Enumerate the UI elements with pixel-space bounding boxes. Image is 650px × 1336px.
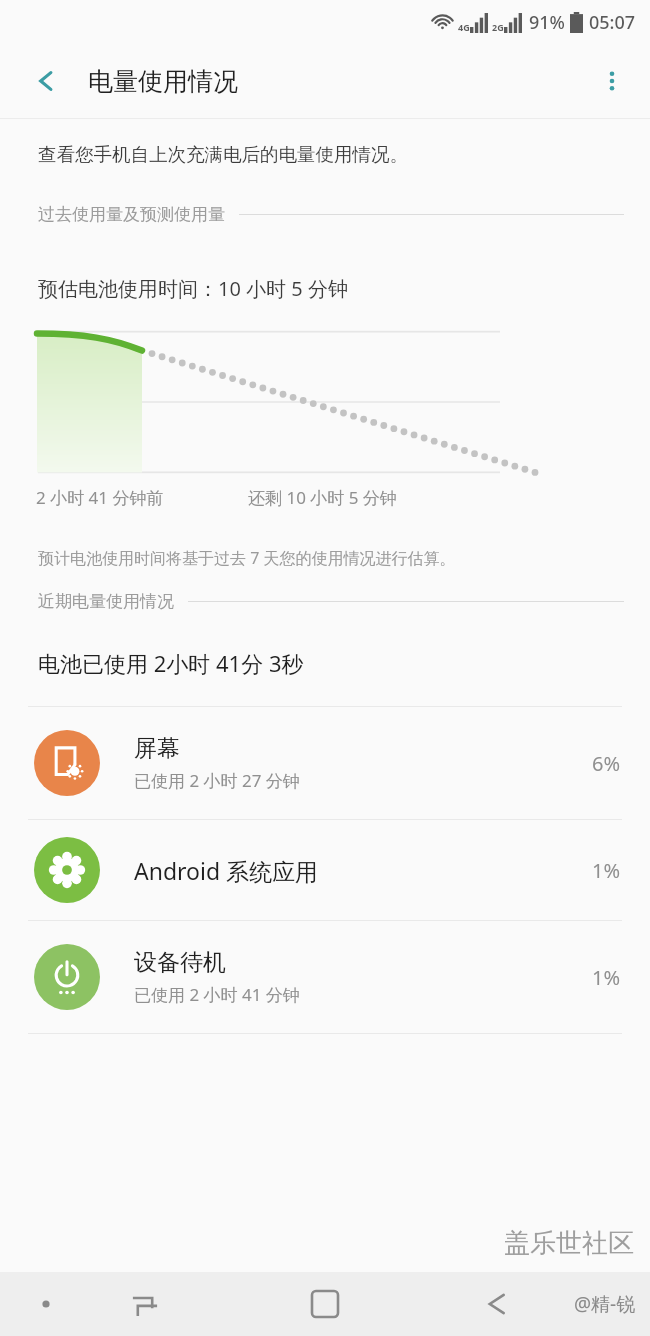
staticText: 过去使用量及预测使用量: [38, 204, 225, 225]
staticText: Android 系统应用: [134, 855, 319, 886]
staticText: 设备待机: [134, 948, 226, 977]
staticText: 6%: [591, 750, 620, 777]
staticText: 近期电量使用情况: [38, 591, 174, 612]
button[interactable]: Home: [296, 1275, 354, 1333]
button[interactable]: 屏幕: [0, 707, 650, 819]
staticText: @精-锐: [574, 1291, 636, 1317]
staticText: 2G: [492, 21, 504, 33]
staticText: 4G: [458, 21, 470, 33]
staticText: 还剩 10 小时 5 分钟: [248, 486, 397, 509]
button[interactable]: More options: [588, 57, 636, 105]
button[interactable]: Android 系统应用: [0, 820, 650, 920]
staticText: 盖乐世社区: [504, 1227, 634, 1260]
button[interactable]: Back: [470, 1277, 524, 1331]
staticText: 05:07: [589, 10, 636, 35]
button[interactable]: Back: [22, 57, 70, 105]
staticText: 屏幕: [134, 734, 180, 763]
button[interactable]: Menu dot: [22, 1280, 70, 1328]
staticText: 预计电池使用时间将基于过去 7 天您的使用情况进行估算。: [38, 547, 456, 569]
staticText: 2 小时 41 分钟前: [36, 486, 164, 509]
button[interactable]: 设备待机: [0, 921, 650, 1033]
staticText: 91%: [529, 10, 565, 35]
staticText: 已使用 2 小时 27 分钟: [134, 769, 300, 792]
staticText: 查看您手机自上次充满电后的电量使用情况。: [38, 143, 408, 166]
staticText: 电量使用情况: [88, 66, 238, 97]
button[interactable]: Recents: [118, 1277, 172, 1331]
staticText: 1%: [591, 964, 620, 991]
staticText: 电池已使用 2小时 41分 3秒: [38, 648, 304, 678]
staticText: 预估电池使用时间：10 小时 5 分钟: [38, 275, 348, 302]
staticText: 已使用 2 小时 41 分钟: [134, 983, 300, 1006]
staticText: 1%: [591, 857, 620, 884]
